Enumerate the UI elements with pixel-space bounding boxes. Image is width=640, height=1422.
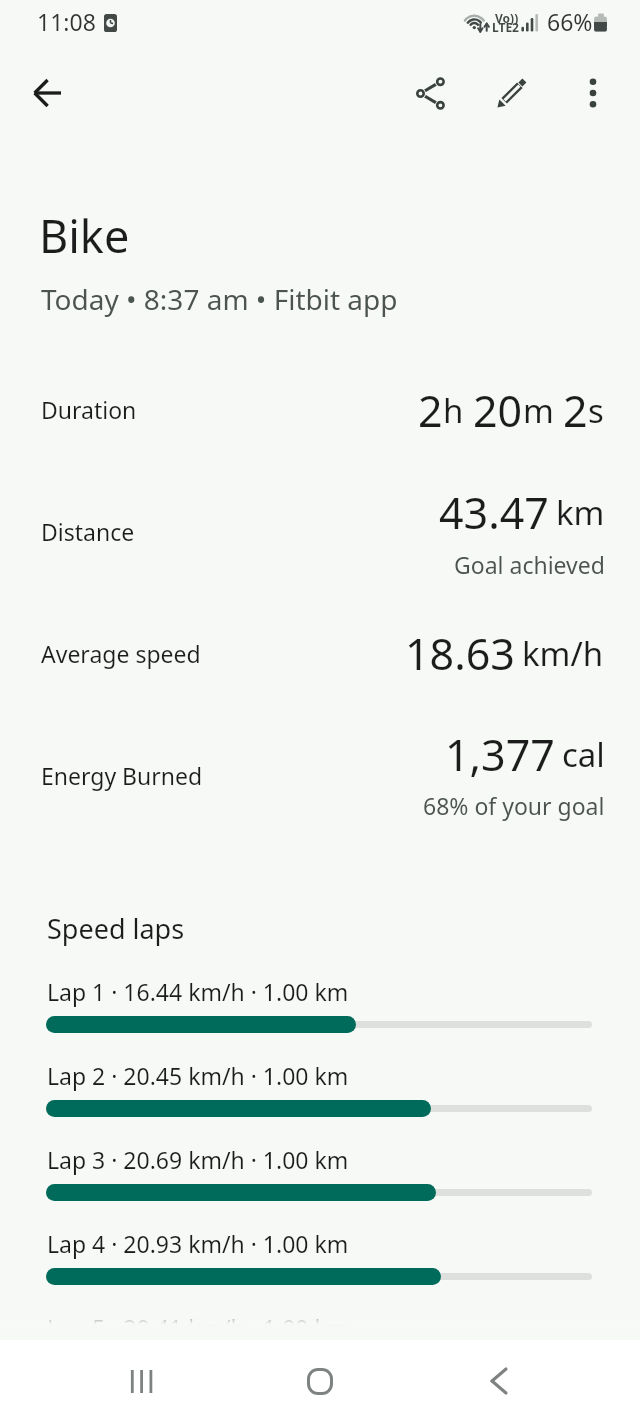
staticText: 2 xyxy=(418,381,443,440)
staticText: Lap 4 · 20.93 km/h · 1.00 km xyxy=(47,1228,349,1259)
staticText: Speed laps xyxy=(47,910,185,947)
staticText: m xyxy=(523,388,554,433)
staticText: Vo)) xyxy=(495,10,519,26)
staticText: Today • 8:37 am • Fitbit app xyxy=(41,280,398,318)
staticText: LTE2 xyxy=(492,19,519,35)
staticText: s xyxy=(588,388,604,433)
staticText: Bike xyxy=(39,205,130,266)
staticText: 11:08 xyxy=(37,6,96,37)
staticText: 43.47 xyxy=(439,483,549,542)
staticText: 20 xyxy=(473,381,523,440)
staticText: Lap 1 · 16.44 km/h · 1.00 km xyxy=(47,976,349,1007)
staticText: Lap 3 · 20.69 km/h · 1.00 km xyxy=(47,1144,349,1175)
button[interactable]: Recent apps xyxy=(82,1340,201,1422)
staticText: km xyxy=(556,490,605,535)
staticText: Duration xyxy=(41,394,137,425)
staticText: Lap 5 · 20.41 km/h · 1.00 km xyxy=(47,1312,349,1343)
button[interactable]: Edit xyxy=(479,60,545,126)
staticText: Goal achieved xyxy=(454,549,605,580)
staticText: 66% xyxy=(547,6,593,37)
staticText: Energy Burned xyxy=(41,760,203,791)
staticText: Lap 2 · 20.45 km/h · 1.00 km xyxy=(47,1060,349,1091)
staticText: cal xyxy=(562,732,605,777)
staticText: Average speed xyxy=(41,638,201,669)
staticText: 2 xyxy=(563,381,588,440)
staticText: 68% of your goal xyxy=(423,790,605,821)
staticText: Distance xyxy=(41,516,135,547)
button[interactable]: Share xyxy=(399,60,465,126)
button[interactable]: More options xyxy=(560,60,626,126)
staticText: 1,377 xyxy=(445,725,555,784)
staticText: km/h xyxy=(522,631,604,676)
button[interactable]: Home xyxy=(260,1340,380,1422)
staticText: h xyxy=(443,388,464,433)
staticText: 18.63 xyxy=(405,624,515,683)
button[interactable]: Back xyxy=(14,60,80,126)
button[interactable]: Back xyxy=(440,1340,558,1422)
